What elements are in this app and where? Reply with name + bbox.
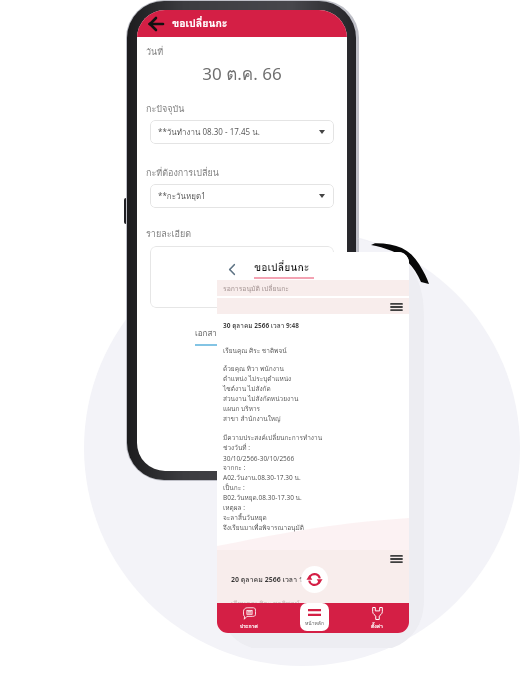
- staticText: ด้วยคุณ ทิวา พนักงาน: [223, 364, 284, 374]
- staticText: รายละเอียด: [146, 227, 192, 241]
- staticText: 30/10/2566-30/10/2566: [223, 454, 295, 463]
- staticText: 20 ตุลาคม 2566 เวลา 17:1: [231, 574, 313, 585]
- staticText: เป็นกะ :: [223, 483, 245, 493]
- staticText: สาขา สำนักงานใหญ่: [223, 414, 281, 424]
- button[interactable]: หน้าหลัก: [300, 603, 329, 631]
- staticText: **กะวันหยุด1: [158, 190, 319, 203]
- button[interactable]: Settings: [363, 603, 391, 631]
- staticText: เรียนคุณ ศิระ ชาติพจน์: [223, 346, 287, 356]
- staticText: เอกสาร: [195, 327, 222, 340]
- staticText: ขอเปลี่ยนกะ: [172, 15, 228, 32]
- staticText: ขอเปลี่ยนกะ: [254, 259, 310, 276]
- staticText: A02.วันงาน.08.30-17.30 น.: [223, 473, 301, 483]
- staticText: มีความประสงค์เปลี่ยนกะการทำงาน: [223, 433, 323, 443]
- staticText: จากกะ :: [223, 463, 246, 473]
- staticText: ประกาศ: [240, 622, 258, 630]
- staticText: หน้าหลัก: [305, 619, 324, 627]
- staticText: 30 ต.ค. 66: [146, 60, 338, 87]
- staticText: เรียนคุณ ศิระ ชาติพจน์: [231, 598, 300, 603]
- staticText: ตำแหน่ง ไม่ระบุตำแหน่ง: [223, 374, 292, 384]
- staticText: รอการอนุมัติ เปลี่ยนกะ: [223, 283, 289, 294]
- staticText: ส่วนงาน ไม่สังกัดหน่วยงาน: [223, 394, 299, 404]
- button[interactable]: Refresh: [301, 566, 328, 593]
- button[interactable]: **วันทำงาน 08.30 - 17.45 น.: [150, 120, 334, 144]
- staticText: กะปัจจุบัน: [146, 102, 185, 116]
- staticText: **วันทำงาน 08.30 - 17.45 น.: [158, 126, 319, 139]
- button[interactable]: Back: [224, 261, 240, 277]
- staticText: กะที่ต้องการเปลี่ยน: [146, 166, 219, 180]
- staticText: ช่วงวันที่ :: [223, 443, 251, 453]
- button[interactable]: Back: [146, 15, 164, 33]
- staticText: วันที่: [146, 45, 164, 59]
- staticText: 30 ตุลาคม 2566 เวลา 9:48: [223, 321, 300, 331]
- button[interactable]: Menu: [389, 300, 404, 313]
- staticText: จึงเรียนมาเพื่อพิจารณาอนุมัติ: [223, 523, 305, 533]
- staticText: B02.วันหยุด.08.30-17.30 น.: [223, 493, 302, 503]
- staticText: ตั้งค่า: [371, 622, 383, 630]
- button[interactable]: Announcements: [235, 603, 263, 631]
- staticText: แผนก บริหาร: [223, 404, 261, 414]
- button[interactable]: Menu: [389, 552, 404, 565]
- button[interactable]: **กะวันหยุด1: [150, 184, 334, 208]
- staticText: จะลาสิ้นวันหยุด: [223, 513, 267, 523]
- staticText: ไซต์งาน ไม่สังกัด: [223, 384, 271, 394]
- staticText: เหตุผล :: [223, 503, 245, 513]
